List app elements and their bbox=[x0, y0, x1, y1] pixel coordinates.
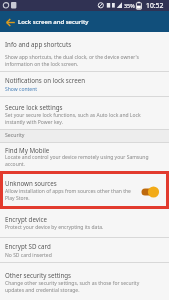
staticText: Encrypt device bbox=[5, 215, 47, 223]
staticText: Show app shortcuts, the dual clock, or t… bbox=[5, 54, 139, 67]
staticText: Allow installation of apps from sources … bbox=[5, 188, 131, 202]
staticText: Set your secure lock functions, such as … bbox=[5, 112, 141, 126]
staticText: Unknown sources bbox=[5, 179, 57, 187]
staticText: Other security settings bbox=[5, 271, 72, 279]
staticText: Lock screen and security bbox=[18, 18, 89, 26]
staticText: Encrypt SD card bbox=[5, 242, 51, 250]
staticText: No SD card inserted bbox=[5, 252, 52, 259]
staticText: Info and app shortcuts bbox=[5, 40, 72, 48]
staticText: 10:52 bbox=[146, 1, 164, 10]
button[interactable]: Other security settings bbox=[0, 263, 169, 300]
staticText: Security bbox=[5, 131, 25, 138]
staticText: Change other security settings, such as … bbox=[5, 280, 140, 293]
button[interactable]: Encrypt SD card bbox=[0, 238, 169, 263]
button[interactable] bbox=[2, 14, 18, 30]
staticText: Protect your device by encrypting its da… bbox=[5, 224, 104, 231]
staticText: Find My Mobile bbox=[5, 146, 50, 154]
staticText: 35% bbox=[124, 2, 135, 9]
staticText: Secure lock settings bbox=[5, 103, 63, 111]
button[interactable]: Info and app shortcuts bbox=[0, 32, 169, 71]
staticText: Notifications on lock screen bbox=[5, 76, 85, 84]
button[interactable]: Unknown sources bbox=[0, 171, 169, 209]
staticText: Show content bbox=[5, 86, 38, 93]
button[interactable]: Notifications on lock screen bbox=[0, 72, 169, 97]
staticText: Locate and control your device remotely … bbox=[5, 154, 149, 168]
button[interactable]: Find My Mobile bbox=[0, 143, 169, 171]
button[interactable]: Secure lock settings bbox=[0, 97, 169, 129]
button[interactable]: Encrypt device bbox=[0, 209, 169, 237]
